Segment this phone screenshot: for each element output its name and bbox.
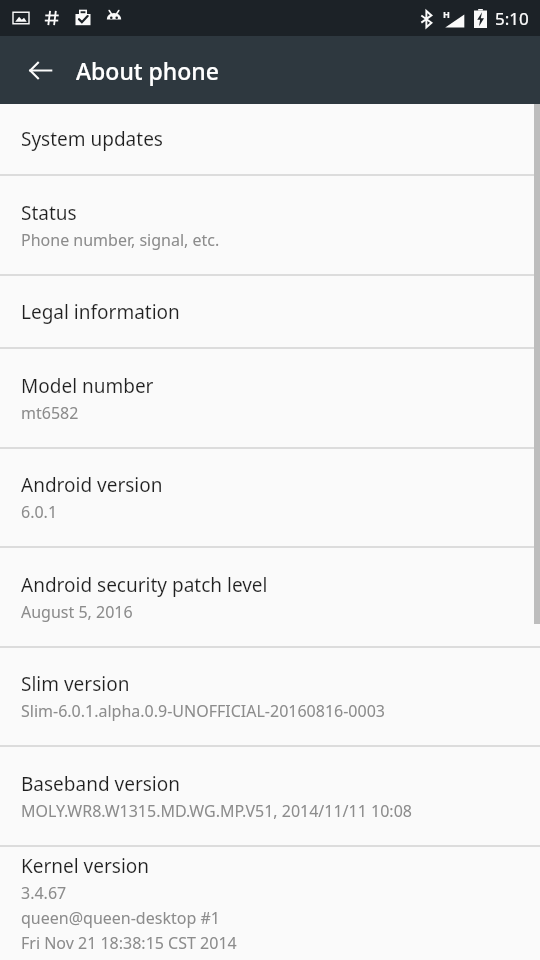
button[interactable]: Android security patch level bbox=[0, 548, 540, 646]
staticText: 5:10 bbox=[495, 7, 529, 30]
staticText: 3.4.67 bbox=[21, 882, 67, 904]
staticText: Slim-6.0.1.alpha.0.9-UNOFFICIAL-20160816… bbox=[21, 700, 385, 722]
staticText: Kernel version bbox=[21, 853, 150, 879]
button[interactable]: Baseband version bbox=[0, 747, 540, 845]
button[interactable]: Model number bbox=[0, 349, 540, 447]
staticText: Legal information bbox=[21, 299, 180, 325]
staticText: Model number bbox=[21, 373, 154, 399]
staticText: Android security patch level bbox=[21, 572, 268, 598]
staticText: H bbox=[443, 8, 450, 20]
staticText: Status bbox=[21, 200, 77, 226]
button[interactable]: Slim version bbox=[0, 648, 540, 745]
button[interactable]: Kernel version bbox=[0, 847, 540, 960]
staticText: August 5, 2016 bbox=[21, 601, 133, 623]
staticText: Baseband version bbox=[21, 771, 180, 797]
staticText: System updates bbox=[21, 126, 163, 152]
staticText: Phone number, signal, etc. bbox=[21, 229, 220, 251]
button[interactable]: Back bbox=[11, 41, 69, 99]
staticText: 6.0.1 bbox=[21, 501, 58, 523]
staticText: About phone bbox=[76, 55, 219, 86]
button[interactable]: Status bbox=[0, 176, 540, 274]
staticText: queen@queen-desktop #1 bbox=[21, 907, 220, 929]
staticText: mt6582 bbox=[21, 402, 79, 424]
staticText: Fri Nov 21 18:38:15 CST 2014 bbox=[21, 932, 237, 954]
staticText: MOLY.WR8.W1315.MD.WG.MP.V51, 2014/11/11 … bbox=[21, 800, 412, 822]
button[interactable]: System updates bbox=[0, 104, 540, 174]
button[interactable]: Android version bbox=[0, 449, 540, 546]
staticText: Android version bbox=[21, 472, 163, 498]
button[interactable]: Legal information bbox=[0, 276, 540, 347]
staticText: Slim version bbox=[21, 671, 130, 697]
